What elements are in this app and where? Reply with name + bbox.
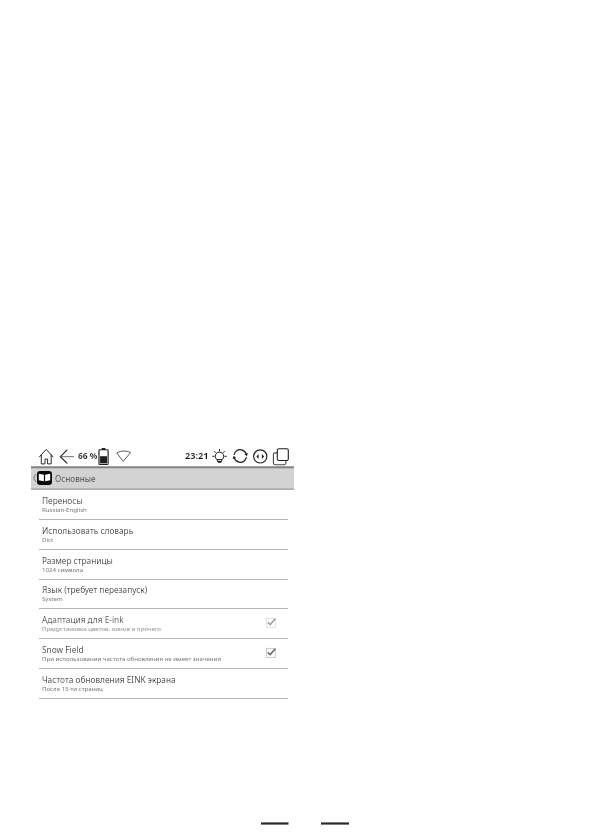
button[interactable]: Tasks	[272, 446, 290, 464]
staticText: 1024 символа	[42, 565, 84, 573]
button[interactable]: Использовать словарь	[31, 520, 294, 550]
button[interactable]: Home	[37, 447, 55, 465]
button[interactable]: Frontlight	[211, 446, 229, 464]
button[interactable]: Rotate	[251, 446, 269, 464]
button[interactable]: Переносы	[31, 490, 294, 520]
button[interactable]: Адаптация для E-ink	[31, 609, 294, 639]
staticText: Предустановка цветов, оинов и прочего	[42, 624, 161, 632]
staticText: Частота обновления EINK экрана	[42, 674, 176, 685]
button[interactable]: Snow Field	[31, 639, 294, 669]
button[interactable]: Refresh	[231, 446, 249, 464]
staticText: Основные	[55, 473, 96, 484]
staticText: 66 %	[78, 450, 98, 461]
button[interactable]: Язык (требует перезапуск)	[31, 579, 294, 609]
staticText: System	[42, 594, 63, 602]
staticText: После 15-ти страниц	[42, 684, 103, 692]
button[interactable]: Основные	[31, 466, 294, 490]
staticText: Использовать словарь	[42, 525, 134, 536]
button[interactable]: Back	[58, 447, 76, 465]
staticText: При использовании частота обновления не …	[42, 654, 221, 662]
staticText: Snow Field	[42, 644, 84, 655]
button[interactable]: Размер страницы	[31, 550, 294, 580]
staticText: 23:21	[185, 449, 209, 462]
staticText: Russian-English	[42, 505, 87, 513]
button[interactable]: Частота обновления EINK экрана	[31, 669, 294, 699]
staticText: Язык (требует перезапуск)	[42, 584, 148, 595]
staticText: Dict	[42, 535, 54, 543]
staticText: Размер страницы	[42, 555, 113, 566]
staticText: Переносы	[42, 495, 83, 506]
staticText: Адаптация для E-ink	[42, 614, 124, 625]
